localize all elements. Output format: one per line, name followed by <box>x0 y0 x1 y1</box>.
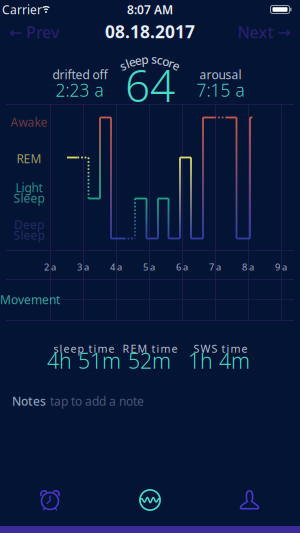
staticText: arousal <box>199 66 241 82</box>
staticText: 08.18.2017 <box>105 20 195 43</box>
staticText: Sleep <box>13 190 44 206</box>
staticText: r <box>169 55 174 71</box>
staticText: Light <box>15 179 42 195</box>
button[interactable]: Notes <box>0 389 300 413</box>
staticText: e <box>135 52 142 68</box>
staticText: drifted off <box>52 66 107 82</box>
staticText: 5 a <box>143 261 155 273</box>
staticText: o <box>162 53 169 69</box>
staticText: 8:07 AM <box>127 1 173 17</box>
staticText: s <box>120 58 126 74</box>
staticText: 7 a <box>209 261 221 273</box>
staticText: tap to add a note <box>50 393 144 409</box>
staticText: 64 <box>125 56 175 114</box>
staticText: 3 a <box>77 261 89 273</box>
staticText: Carrier <box>2 1 42 17</box>
staticText: c <box>157 52 163 68</box>
staticText: 7:15 a <box>196 78 244 101</box>
button[interactable]: ← Prev <box>6 22 62 42</box>
staticText: Movement <box>0 291 60 307</box>
staticText: e <box>129 54 136 70</box>
staticText: p <box>141 51 148 67</box>
staticText: 52m <box>128 346 171 375</box>
button[interactable] <box>20 480 80 520</box>
staticText: e <box>173 57 180 73</box>
staticText: REM <box>16 150 41 166</box>
button[interactable] <box>219 480 279 520</box>
button[interactable] <box>120 480 180 520</box>
staticText: 9 a <box>275 261 287 273</box>
staticText: S W S t i m e <box>193 341 247 356</box>
staticText: 8 a <box>242 261 254 273</box>
staticText: Deep <box>14 216 44 232</box>
staticText: l <box>126 56 129 71</box>
staticText: Awake <box>10 114 47 130</box>
staticText: 6 a <box>176 261 188 273</box>
staticText: ← Prev <box>9 21 59 43</box>
button[interactable]: Next → <box>236 22 292 42</box>
staticText: s <box>151 51 157 67</box>
staticText: Notes <box>12 393 46 409</box>
staticText <box>148 51 151 67</box>
staticText: 2 a <box>44 261 56 273</box>
staticText: s l e e p t i m e <box>53 341 114 356</box>
staticText: 2:23 a <box>55 78 103 101</box>
staticText: 4 a <box>110 261 122 273</box>
staticText: Next → <box>237 21 290 43</box>
staticText: R E M t i m e <box>122 341 177 356</box>
staticText: 4h 51m <box>47 346 121 375</box>
staticText: Sleep <box>13 227 44 243</box>
staticText: 1h 4m <box>188 346 250 375</box>
